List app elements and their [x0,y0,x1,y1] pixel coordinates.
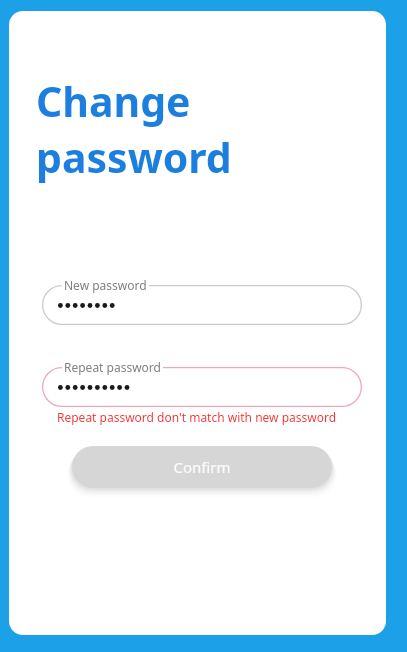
staticText: Repeat password [64,359,161,375]
staticText: Change [36,73,191,129]
staticText: password [36,129,232,185]
staticText: Repeat password don't match with new pas… [57,409,337,425]
button[interactable]: Confirm [72,446,332,488]
staticText: New password [64,277,147,293]
button[interactable]: New password [42,274,362,336]
staticText: Confirm [173,457,231,477]
button[interactable]: Repeat password [42,356,362,418]
